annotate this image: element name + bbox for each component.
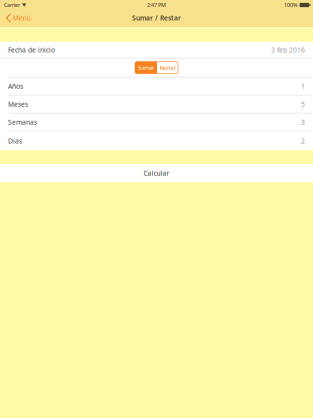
- staticText: Días: [8, 136, 22, 145]
- staticText: Calcular: [143, 169, 169, 178]
- staticText: 100%: [284, 1, 298, 9]
- staticText: Sumar / Restar: [132, 14, 181, 22]
- staticText: Años: [8, 82, 23, 91]
- button[interactable]: Menú: [0, 10, 36, 26]
- button[interactable]: Meses: [0, 95, 313, 113]
- staticText: 5: [301, 100, 305, 109]
- button[interactable]: Calcular: [0, 164, 313, 182]
- staticText: 3: [301, 118, 305, 127]
- staticText: Fecha de inicio: [8, 45, 55, 54]
- button[interactable]: Días: [0, 131, 313, 150]
- staticText: Carrier: [4, 1, 20, 9]
- staticText: 1: [301, 82, 305, 91]
- staticText: Semanas: [8, 118, 37, 127]
- button[interactable]: Fecha de inicio: [0, 42, 313, 58]
- staticText: Meses: [8, 100, 28, 109]
- staticText: 2: [301, 136, 305, 145]
- button[interactable]: Semanas: [0, 113, 313, 131]
- staticText: Restar: [159, 64, 175, 71]
- button[interactable]: Años: [0, 77, 313, 95]
- staticText: Sumar: [138, 64, 154, 71]
- button[interactable]: Sumar: [135, 62, 157, 74]
- button[interactable]: Restar: [157, 62, 178, 74]
- staticText: 3 feb 2016: [271, 45, 305, 54]
- staticText: Menú: [13, 14, 31, 22]
- staticText: 2:47 PM: [147, 1, 166, 9]
